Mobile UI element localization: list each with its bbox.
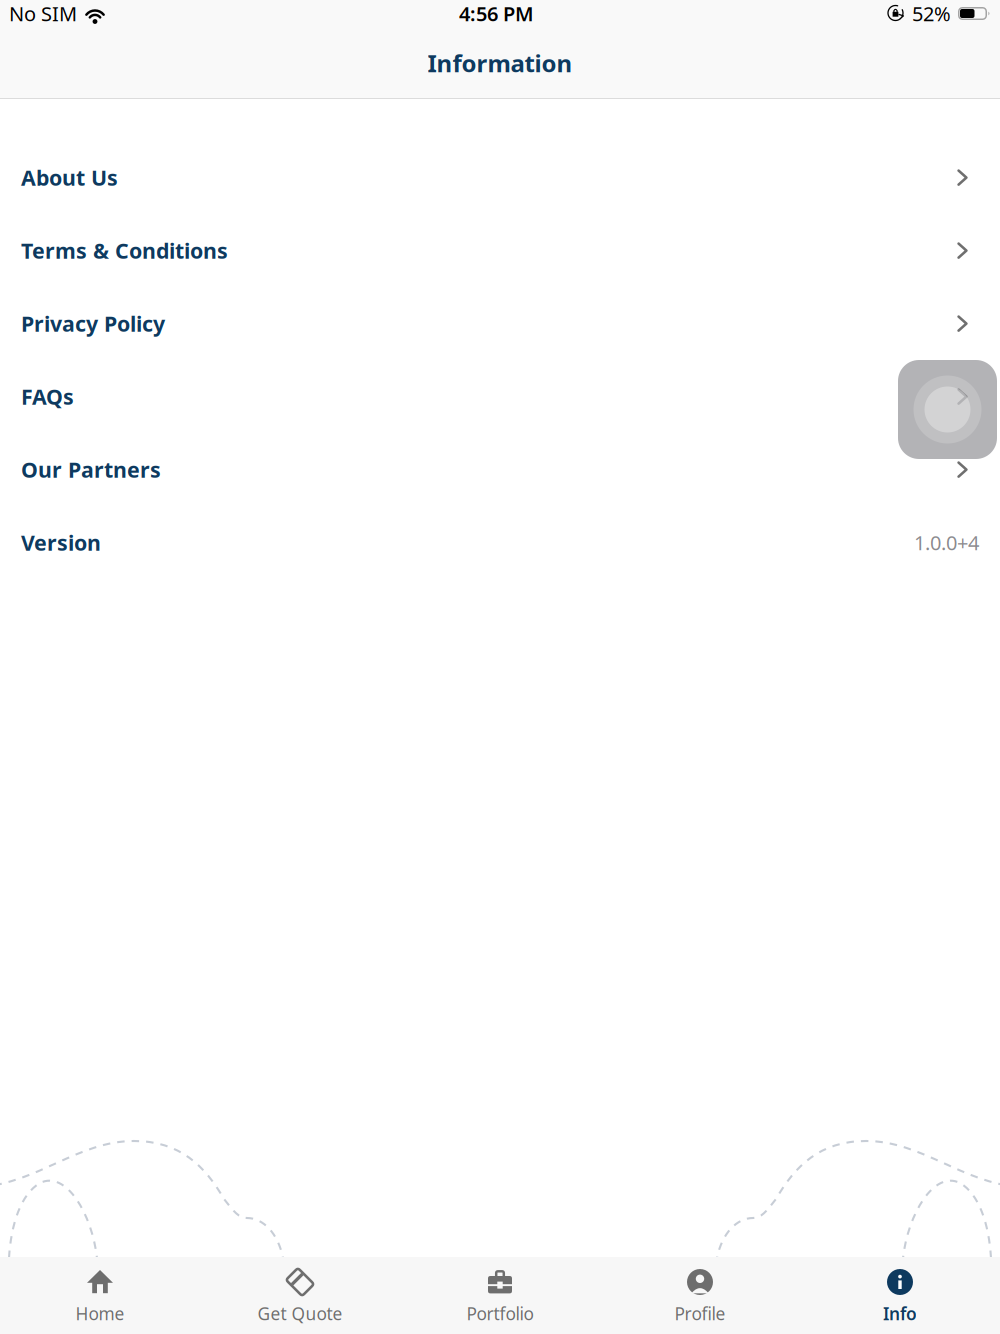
staticText: Get Quote [257,1302,342,1325]
staticText: Terms & Conditions [21,236,228,265]
button[interactable]: Our Partners [0,433,1000,506]
staticText: FAQs [21,382,74,411]
button[interactable]: Info [800,1257,1000,1334]
staticText: No SIM [9,0,77,27]
staticText: Profile [674,1302,725,1325]
staticText: Info [883,1302,917,1325]
staticText: 52% [912,0,951,27]
button[interactable]: Get Quote [200,1257,400,1334]
staticText: Our Partners [21,455,161,484]
button[interactable]: AssistiveTouch [898,360,997,459]
staticText: Portfolio [466,1302,533,1325]
staticText: About Us [21,163,118,192]
button[interactable]: Terms & Conditions [0,214,1000,287]
button[interactable]: About Us [0,141,1000,214]
button[interactable]: Home [0,1257,200,1334]
button[interactable]: FAQs [0,360,1000,433]
staticText: Information [427,47,572,79]
button[interactable]: Privacy Policy [0,287,1000,360]
button[interactable]: Portfolio [400,1257,600,1334]
staticText: 4:56 PM [459,0,534,27]
staticText: Version [21,528,101,557]
staticText: 1.0.0+4 [914,529,979,556]
staticText: Privacy Policy [21,309,165,338]
staticText: Home [75,1302,124,1325]
button[interactable]: Profile [600,1257,800,1334]
